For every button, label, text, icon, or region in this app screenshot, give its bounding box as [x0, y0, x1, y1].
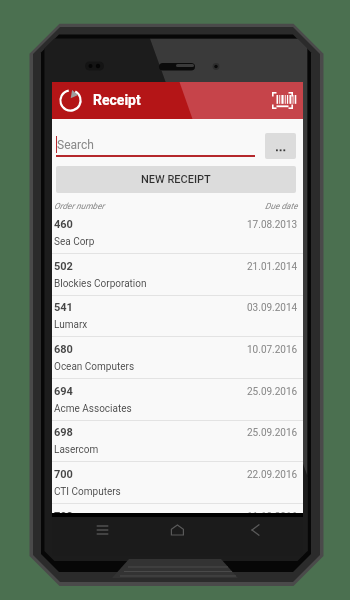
button[interactable]: 541 [52, 295, 303, 337]
staticText: 460 [54, 218, 73, 231]
staticText: 502 [54, 260, 73, 273]
button[interactable]: 502 [52, 254, 303, 296]
button[interactable]: 694 [52, 379, 303, 421]
button[interactable]: 460 [52, 212, 303, 254]
staticText: 694 [54, 385, 73, 398]
staticText: Acme Associates [54, 403, 132, 415]
staticText: Blockies Corporation [54, 278, 147, 290]
staticText: 25.09.2016 [247, 427, 298, 439]
staticText: Ocean Computers [54, 361, 135, 373]
staticText: Sea Corp [54, 236, 95, 248]
staticText: Search [57, 138, 94, 152]
staticText: 703 [54, 510, 73, 523]
staticText: 541 [54, 301, 73, 314]
staticText: 700 [54, 468, 73, 481]
button[interactable]: 698 [52, 420, 303, 462]
staticText: Lumarx [54, 319, 88, 331]
staticText: 22.09.2016 [247, 469, 298, 481]
button[interactable]: Scan barcode [268, 88, 297, 113]
button[interactable]: 700 [52, 462, 303, 504]
staticText: 680 [54, 343, 73, 356]
staticText: 25.09.2016 [247, 386, 298, 398]
button[interactable]: More options [265, 133, 296, 159]
staticText: 21.01.2014 [247, 261, 298, 273]
staticText: 10.07.2016 [247, 344, 298, 356]
staticText: Receipt [93, 92, 141, 108]
button[interactable]: 703 [52, 504, 303, 546]
button[interactable]: Back [234, 517, 275, 543]
button[interactable]: Home [157, 517, 198, 543]
staticText: NEW RECEIPT [141, 173, 211, 186]
staticText: Lasercom [54, 444, 99, 456]
staticText: CTI Computers [54, 486, 121, 498]
button[interactable]: Menu [82, 517, 123, 543]
button[interactable]: 680 [52, 337, 303, 379]
staticText: Order number [54, 201, 105, 211]
staticText: 11.10.2016 [247, 511, 298, 523]
button[interactable]: NEW RECEIPT [56, 166, 296, 193]
other: App logo [59, 89, 82, 112]
staticText: 03.09.2014 [247, 302, 298, 314]
staticText: 17.08.2013 [247, 219, 298, 231]
staticText: Due date [265, 201, 298, 211]
staticText: 698 [54, 426, 73, 439]
